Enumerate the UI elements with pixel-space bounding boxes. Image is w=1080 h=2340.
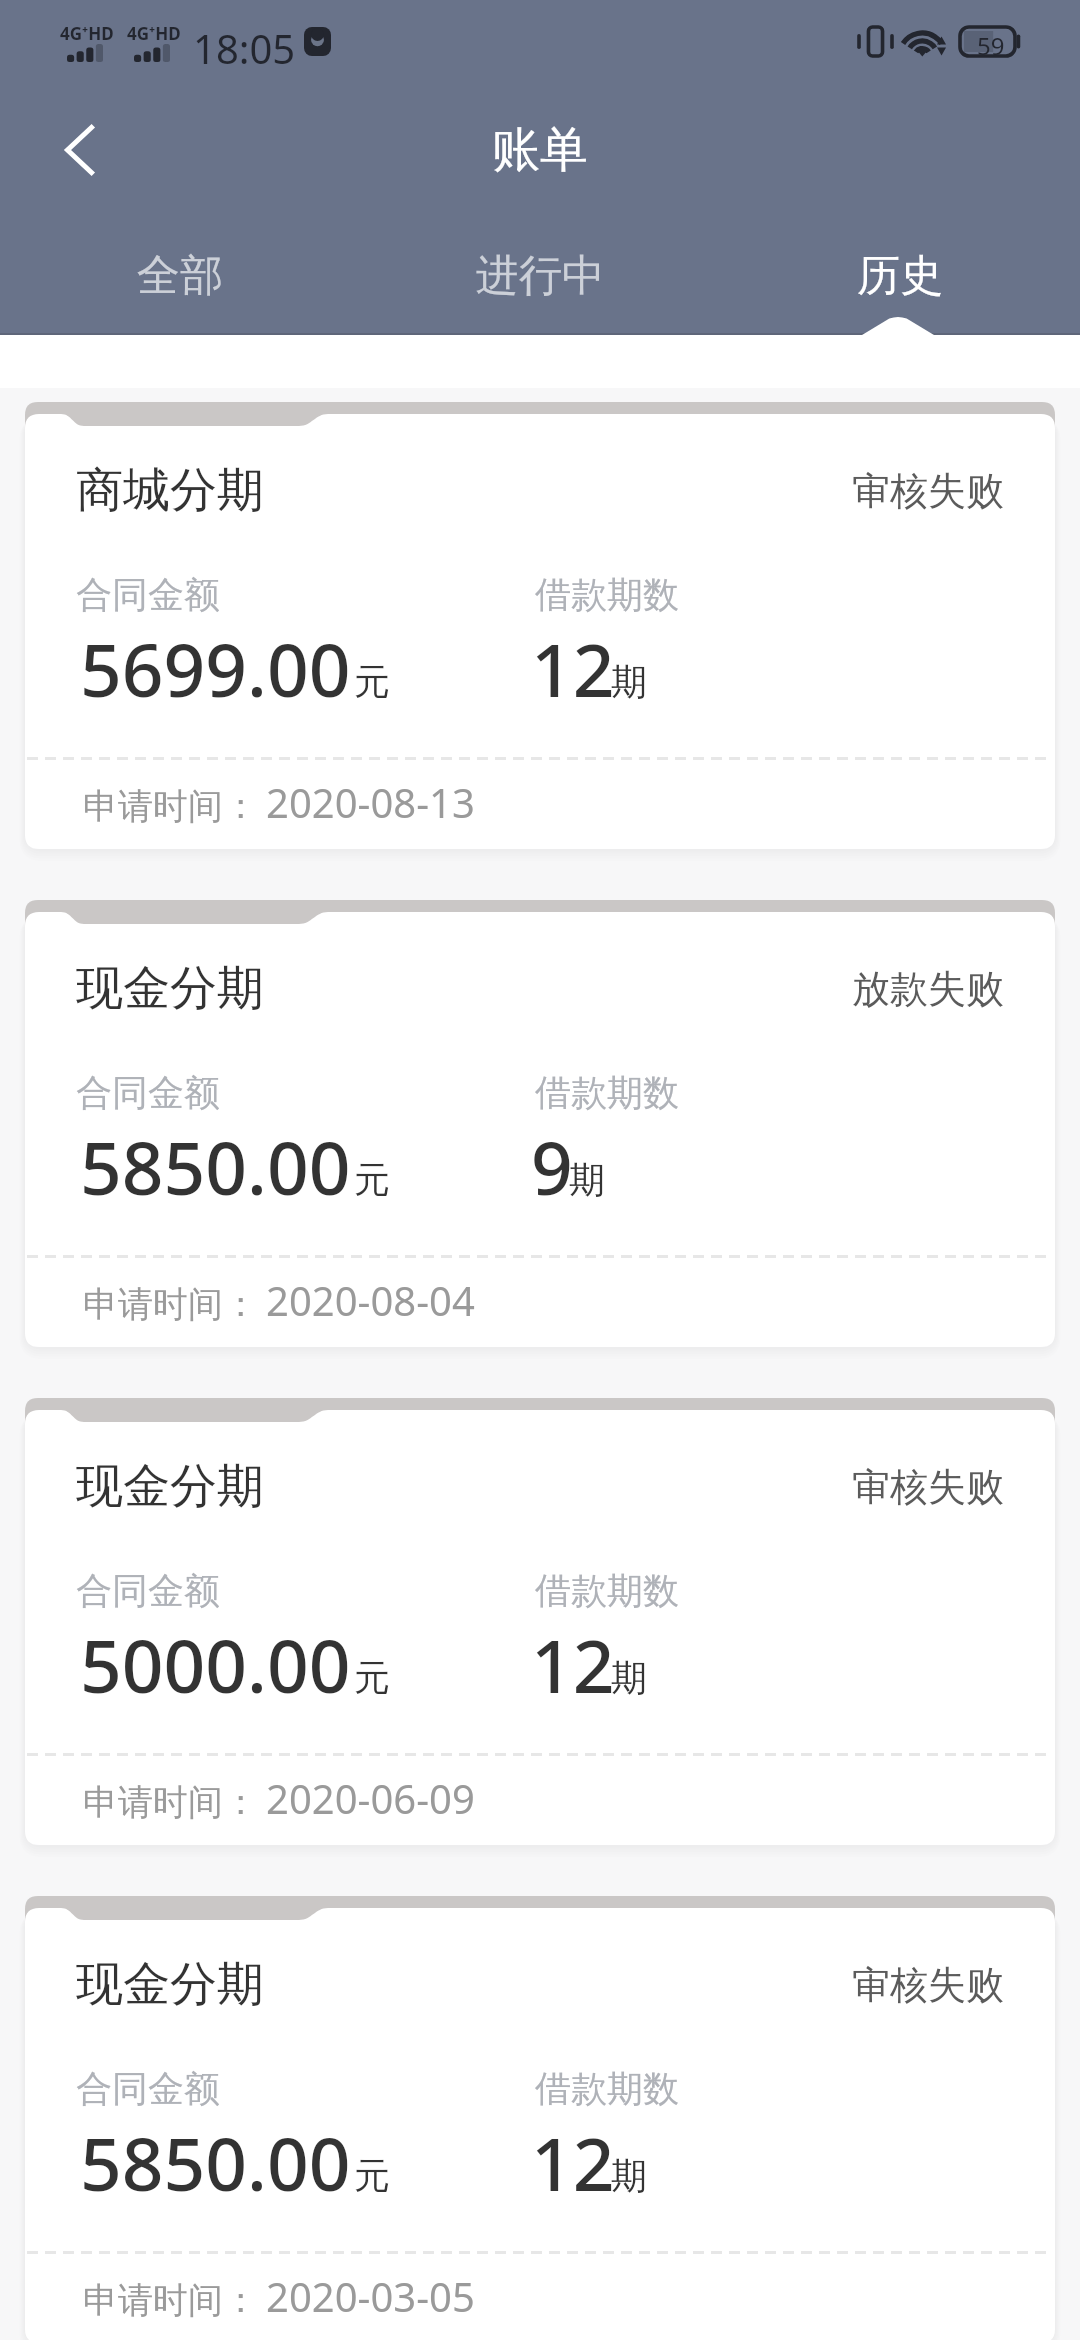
button[interactable]: 历史 — [720, 249, 1080, 303]
staticText: 借款期数 — [535, 2066, 679, 2111]
staticText: 2020-03-05 — [266, 2269, 475, 2323]
staticText: 5000.00 — [80, 1615, 351, 1714]
staticText: 12 — [531, 619, 615, 718]
staticText: 全部 — [137, 249, 223, 303]
staticText: 现金分期 — [76, 1457, 264, 1516]
staticText: 9 — [531, 1117, 573, 1216]
staticText: 合同金额 — [76, 2066, 220, 2111]
button[interactable]: 进行中 — [360, 249, 720, 303]
staticText: 审核失败 — [852, 1463, 1004, 1511]
staticText: 4G⁺HD — [60, 22, 114, 45]
staticText: 借款期数 — [535, 1070, 679, 1115]
staticText: 审核失败 — [852, 467, 1004, 515]
button[interactable]: 现金分期 — [25, 1896, 1055, 2340]
staticText: 2020-08-13 — [266, 775, 475, 829]
staticText: 合同金额 — [76, 572, 220, 617]
staticText: 申请时间： — [83, 1780, 258, 1824]
button[interactable]: Back — [34, 100, 124, 200]
staticText: 期 — [611, 1655, 647, 1700]
staticText: 合同金额 — [76, 1070, 220, 1115]
staticText: 2020-08-04 — [266, 1273, 475, 1327]
button[interactable]: 现金分期 — [25, 1398, 1055, 1845]
staticText: 元 — [354, 1655, 390, 1700]
button[interactable]: 商城分期 — [25, 402, 1055, 849]
staticText: 元 — [354, 1157, 390, 1202]
staticText: 12 — [531, 2113, 615, 2212]
staticText: 12 — [531, 1615, 615, 1714]
staticText: 元 — [354, 659, 390, 704]
button[interactable]: 现金分期 — [25, 900, 1055, 1347]
staticText: 进行中 — [476, 249, 605, 303]
staticText: 2020-06-09 — [266, 1771, 475, 1825]
staticText: 59 — [977, 29, 1005, 62]
staticText: 5850.00 — [80, 1117, 351, 1216]
staticText: 借款期数 — [535, 1568, 679, 1613]
staticText: 放款失败 — [852, 965, 1004, 1013]
staticText: 4G⁺HD — [127, 22, 181, 45]
staticText: 期 — [569, 1157, 605, 1202]
staticText: 5850.00 — [80, 2113, 351, 2212]
staticText: 账单 — [492, 120, 588, 180]
staticText: 期 — [611, 659, 647, 704]
button[interactable]: 全部 — [0, 249, 360, 303]
staticText: 申请时间： — [83, 784, 258, 828]
staticText: 历史 — [857, 249, 943, 303]
staticText: 审核失败 — [852, 1961, 1004, 2009]
staticText: 合同金额 — [76, 1568, 220, 1613]
staticText: 商城分期 — [76, 461, 264, 520]
staticText: 期 — [611, 2153, 647, 2198]
staticText: 现金分期 — [76, 959, 264, 1018]
staticText: 元 — [354, 2153, 390, 2198]
staticText: 现金分期 — [76, 1955, 264, 2014]
staticText: 5699.00 — [80, 619, 351, 718]
staticText: 申请时间： — [83, 2278, 258, 2322]
staticText: 18:05 — [193, 21, 296, 75]
staticText: 借款期数 — [535, 572, 679, 617]
staticText: 申请时间： — [83, 1282, 258, 1326]
